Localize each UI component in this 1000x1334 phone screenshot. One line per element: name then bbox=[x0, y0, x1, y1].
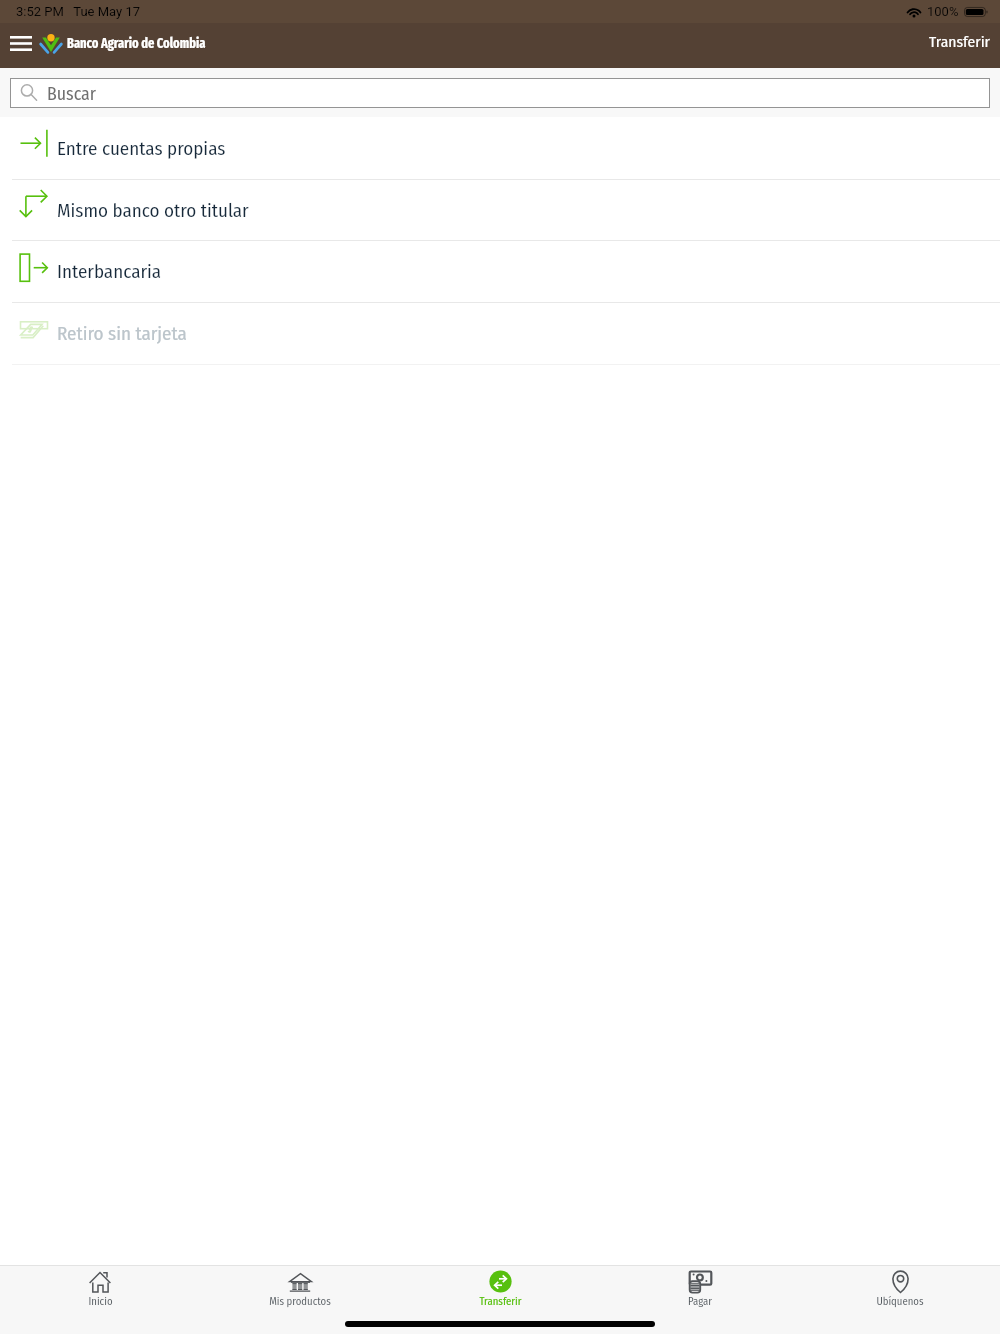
button[interactable]: Menu bbox=[10, 28, 32, 58]
staticText: Inicio bbox=[88, 1295, 113, 1308]
staticText: Buscar bbox=[47, 83, 97, 104]
staticText: Banco Agrario de Colombia bbox=[67, 35, 206, 51]
button[interactable]: Transferir bbox=[400, 1266, 600, 1334]
button[interactable]: Inicio bbox=[0, 1266, 200, 1334]
staticText: Mismo banco otro titular bbox=[57, 199, 249, 222]
button[interactable]: Mis productos bbox=[200, 1266, 400, 1334]
staticText: Retiro sin tarjeta bbox=[57, 322, 187, 345]
button[interactable]: Pagar bbox=[600, 1266, 800, 1334]
staticText: 3:52 PM Tue May 17 bbox=[16, 4, 141, 19]
button[interactable]: Buscar bbox=[10, 78, 990, 108]
button[interactable]: Mismo banco otro titular bbox=[0, 180, 1000, 240]
staticText: Mis productos bbox=[269, 1295, 331, 1308]
staticText: Pagar bbox=[688, 1295, 712, 1308]
staticText: Transferir bbox=[929, 33, 990, 52]
button[interactable]: Entre cuentas propias bbox=[0, 117, 1000, 179]
button[interactable]: Interbancaria bbox=[0, 241, 1000, 302]
staticText: Ubíquenos bbox=[876, 1295, 924, 1308]
staticText: Interbancaria bbox=[57, 260, 162, 283]
staticText: 100% bbox=[927, 4, 959, 19]
button[interactable]: Ubíquenos bbox=[800, 1266, 1000, 1334]
button[interactable]: Retiro sin tarjeta bbox=[0, 303, 1000, 364]
staticText: Transferir bbox=[479, 1295, 522, 1308]
staticText: Entre cuentas propias bbox=[57, 137, 226, 160]
button[interactable]: Transferir bbox=[919, 27, 1000, 58]
